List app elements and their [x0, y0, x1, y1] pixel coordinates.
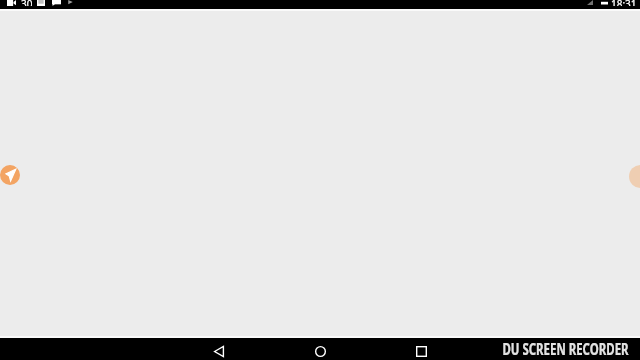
button[interactable]: Recent apps: [409, 340, 433, 360]
button[interactable]: More options: [629, 165, 640, 188]
button[interactable]: Back: [207, 340, 231, 360]
staticText: 30: [21, 0, 33, 6]
button[interactable]: Home: [308, 340, 332, 360]
staticText: DU SCREEN RECORDER: [502, 338, 629, 360]
button[interactable]: Navigate: [0, 165, 20, 185]
staticText: 18:31: [611, 0, 637, 6]
